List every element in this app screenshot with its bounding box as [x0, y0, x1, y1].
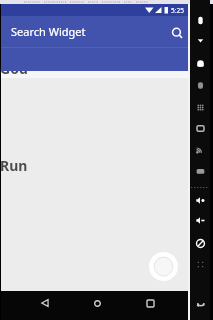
button[interactable]: Add [149, 252, 178, 281]
button[interactable]: Back [36, 294, 54, 312]
staticText: 5:25 [171, 6, 184, 15]
staticText: Search Widget [11, 24, 86, 39]
staticText: Run [0, 156, 28, 175]
staticText: God [0, 59, 28, 78]
button[interactable]: Search [165, 21, 189, 45]
button[interactable]: Home [88, 294, 106, 312]
button[interactable]: Recents [141, 294, 159, 312]
